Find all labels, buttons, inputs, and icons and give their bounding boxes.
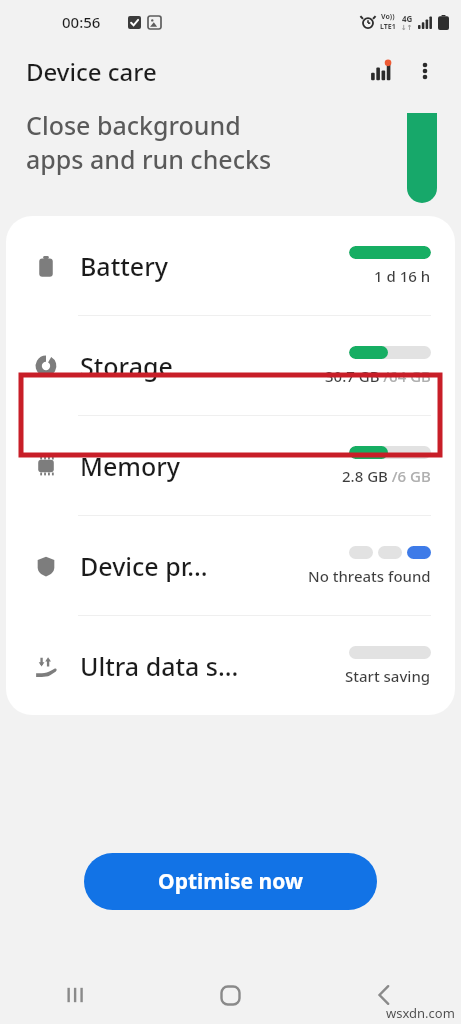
- button[interactable]: More options: [403, 49, 447, 93]
- button[interactable]: Usage statistics: [359, 49, 403, 93]
- staticText: No threats found: [308, 566, 431, 586]
- button[interactable]: Recent apps: [0, 966, 153, 1024]
- button[interactable]: Ultra data s...: [6, 616, 455, 715]
- staticText: Device care: [26, 55, 157, 88]
- staticText: 00:56: [62, 12, 101, 32]
- staticText: Battery: [80, 249, 349, 283]
- staticText: ↓↑: [401, 24, 413, 32]
- button[interactable]: Home: [153, 966, 307, 1024]
- staticText: Vo)): [381, 12, 395, 22]
- button[interactable]: Memory: [6, 416, 455, 515]
- staticText: Memory: [80, 449, 342, 483]
- staticText: 2.8 GB /6 GB: [342, 466, 431, 486]
- staticText: Ultra data s...: [80, 649, 345, 683]
- button[interactable]: Device pr...: [6, 516, 455, 615]
- staticText: Device pr...: [80, 549, 308, 583]
- staticText: 30.7 GB /64 GB: [325, 366, 431, 386]
- staticText: Optimise now: [158, 867, 303, 896]
- staticText: Close background apps and run checks: [26, 108, 399, 176]
- staticText: LTE1: [380, 22, 396, 32]
- button[interactable]: Optimise now: [84, 853, 377, 910]
- staticText: Start saving: [345, 666, 431, 686]
- button[interactable]: Battery: [6, 216, 455, 315]
- button[interactable]: Back: [307, 966, 461, 1024]
- staticText: 4G: [402, 13, 413, 24]
- staticText: 1 d 16 h: [374, 266, 431, 286]
- staticText: wsxdn.com: [386, 1004, 455, 1022]
- button[interactable]: Storage: [6, 316, 455, 415]
- staticText: Storage: [80, 349, 325, 383]
